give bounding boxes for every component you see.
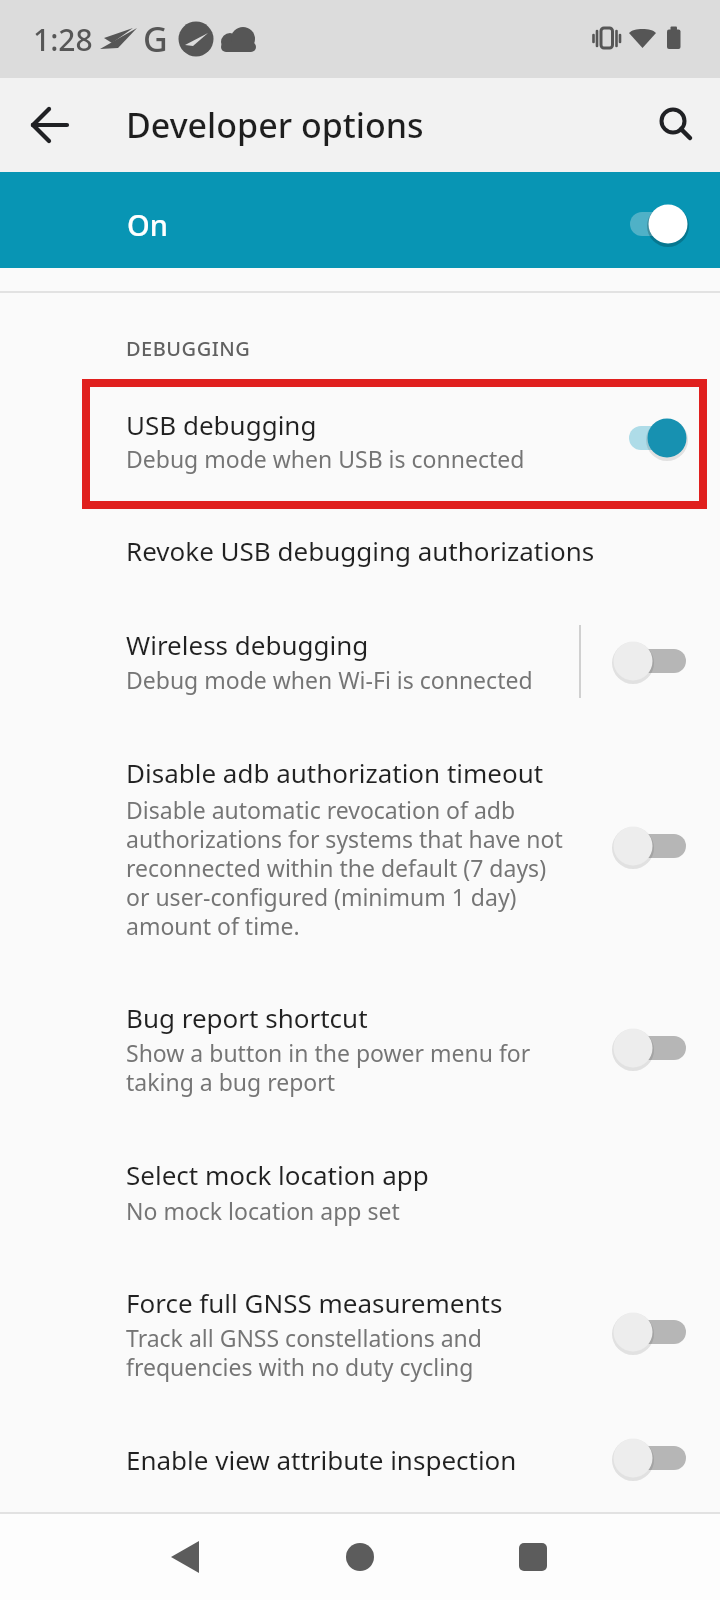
button[interactable]: Enable view attribute inspection [0, 1424, 720, 1494]
button[interactable] [606, 1026, 692, 1070]
staticText: On [127, 205, 168, 244]
button[interactable]: Bug report shortcut [0, 988, 720, 1098]
button[interactable] [325, 1522, 395, 1592]
button[interactable]: Select mock location app [0, 1140, 720, 1234]
button[interactable]: Revoke USB debugging authorizations [0, 512, 720, 590]
staticText: Disable adb authorization timeout [126, 755, 544, 790]
button[interactable] [606, 416, 692, 460]
staticText: Select mock location app [126, 1157, 429, 1192]
button[interactable] [606, 639, 692, 683]
staticText: Wireless debugging [126, 627, 369, 662]
button[interactable] [606, 1436, 692, 1480]
button[interactable] [636, 78, 720, 172]
button[interactable] [150, 1522, 220, 1592]
staticText: 1:28 [33, 19, 93, 60]
staticText: DEBUGGING [126, 335, 251, 362]
button[interactable]: USB debugging [0, 388, 720, 501]
button[interactable]: On [0, 172, 720, 268]
button[interactable] [498, 1522, 568, 1592]
staticText: No mock location app set [126, 1195, 400, 1226]
button[interactable]: Disable adb authorization timeout [0, 742, 720, 940]
staticText: Revoke USB debugging authorizations [126, 533, 595, 568]
button[interactable]: Wireless debugging [0, 608, 720, 714]
staticText: Debug mode when Wi-Fi is connected [126, 664, 533, 695]
button[interactable] [0, 78, 94, 172]
staticText: Debug mode when USB is connected [126, 443, 525, 474]
button[interactable] [606, 824, 692, 868]
staticText: USB debugging [126, 407, 317, 442]
staticText: Developer options [126, 102, 424, 148]
staticText: Disable automatic revocation of adb auth… [126, 794, 563, 942]
staticText: G [143, 16, 168, 62]
staticText: Track all GNSS constellations and freque… [126, 1322, 482, 1383]
button[interactable] [606, 1310, 692, 1354]
staticText: Enable view attribute inspection [126, 1442, 517, 1477]
staticText: Bug report shortcut [126, 1000, 368, 1035]
button[interactable]: Force full GNSS measurements [0, 1272, 720, 1382]
staticText: Show a button in the power menu for taki… [126, 1037, 531, 1098]
staticText: Force full GNSS measurements [126, 1285, 503, 1320]
